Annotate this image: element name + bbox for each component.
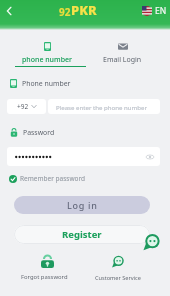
button[interactable]: Forgot password [14,252,81,284]
staticText: EN [155,5,167,17]
staticText: Email Login [103,55,142,65]
staticText: Log in [67,199,98,211]
staticText: phone number [22,55,72,65]
staticText: Password [23,128,55,137]
staticText: Register [62,228,102,241]
button[interactable]: Back [1,3,17,19]
staticText: Customer Service [95,274,141,282]
button[interactable]: +92 [7,99,46,114]
staticText: +92 [17,102,29,111]
button[interactable]: Customer Service [88,252,150,284]
staticText: Forgot password [21,273,68,281]
button[interactable]: Please enter the phone number [48,99,160,114]
button[interactable]: Remember password [9,174,86,183]
button[interactable]: Show password [146,153,154,161]
button[interactable]: Log in [14,196,150,214]
staticText: Phone number [22,79,71,88]
staticText: 92 [59,5,71,19]
staticText: Please enter the phone number [56,103,147,111]
button[interactable]: phone number [4,36,89,68]
button[interactable]: Register [14,225,150,244]
button[interactable]: Customer service chat [142,233,160,251]
staticText: Remember password [20,174,86,183]
staticText: PKR [71,1,97,19]
button[interactable]: Language [142,5,167,17]
button[interactable]: Email Login [80,36,165,68]
staticText: PKR [71,1,97,19]
